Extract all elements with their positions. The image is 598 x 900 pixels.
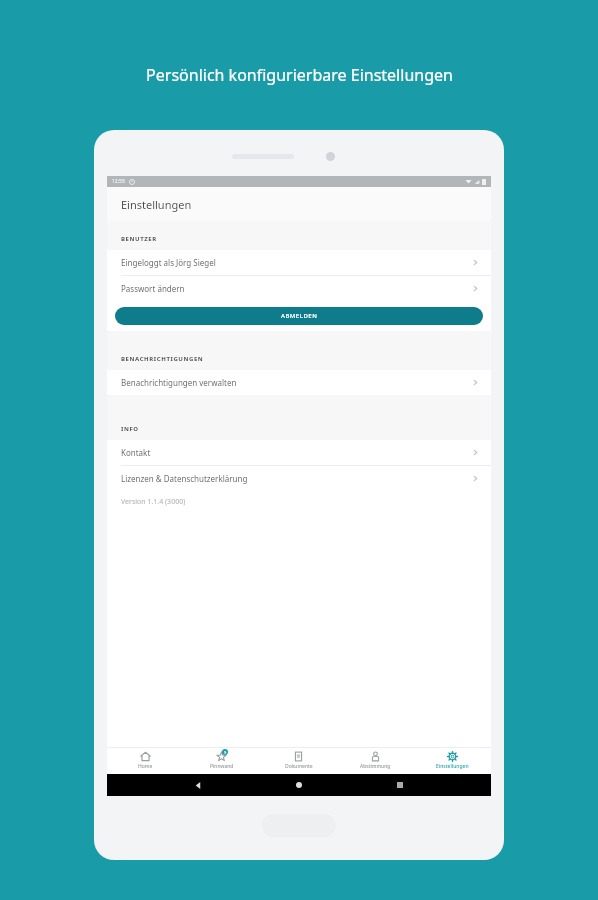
staticText: Home: [138, 763, 153, 770]
button[interactable]: Home: [107, 747, 183, 774]
button[interactable]: Home: [289, 775, 309, 795]
button[interactable]: Benachrichtigungen verwalten: [107, 370, 491, 395]
button[interactable]: Einstellungen: [414, 747, 491, 774]
staticText: Version 1.1.4 (3000): [121, 497, 186, 507]
staticText: BENACHRICHTIGUNGEN: [121, 355, 204, 363]
button[interactable]: 9: [183, 747, 260, 774]
staticText: 12:55: [112, 178, 125, 185]
staticText: Pinnwand: [210, 763, 234, 770]
staticText: Einstellungen: [121, 197, 192, 212]
staticText: Abstimmung: [360, 763, 391, 770]
staticText: Persönlich konfigurierbare Einstellungen: [146, 64, 453, 86]
button[interactable]: Abstimmung: [337, 747, 414, 774]
staticText: Passwort ändern: [121, 283, 185, 294]
staticText: 9: [224, 750, 227, 755]
button[interactable]: Kontakt: [107, 440, 491, 465]
button[interactable]: Lizenzen & Datenschutzerklärung: [107, 466, 491, 491]
button[interactable]: Dokumente: [260, 747, 337, 774]
staticText: Dokumente: [285, 763, 313, 770]
button[interactable]: Eingeloggt als Jörg Siegel: [107, 250, 491, 275]
staticText: Lizenzen & Datenschutzerklärung: [121, 473, 248, 484]
staticText: BENUTZER: [121, 235, 157, 243]
staticText: Einstellungen: [436, 763, 469, 770]
staticText: Eingeloggt als Jörg Siegel: [121, 257, 216, 268]
button[interactable]: Passwort ändern: [107, 276, 491, 301]
staticText: Kontakt: [121, 447, 151, 458]
staticText: INFO: [121, 425, 139, 433]
staticText: ABMELDEN: [281, 312, 318, 320]
button[interactable]: Back: [188, 775, 208, 795]
button[interactable]: Recents: [390, 775, 410, 795]
button[interactable]: ABMELDEN: [115, 307, 483, 325]
staticText: Benachrichtigungen verwalten: [121, 377, 237, 388]
